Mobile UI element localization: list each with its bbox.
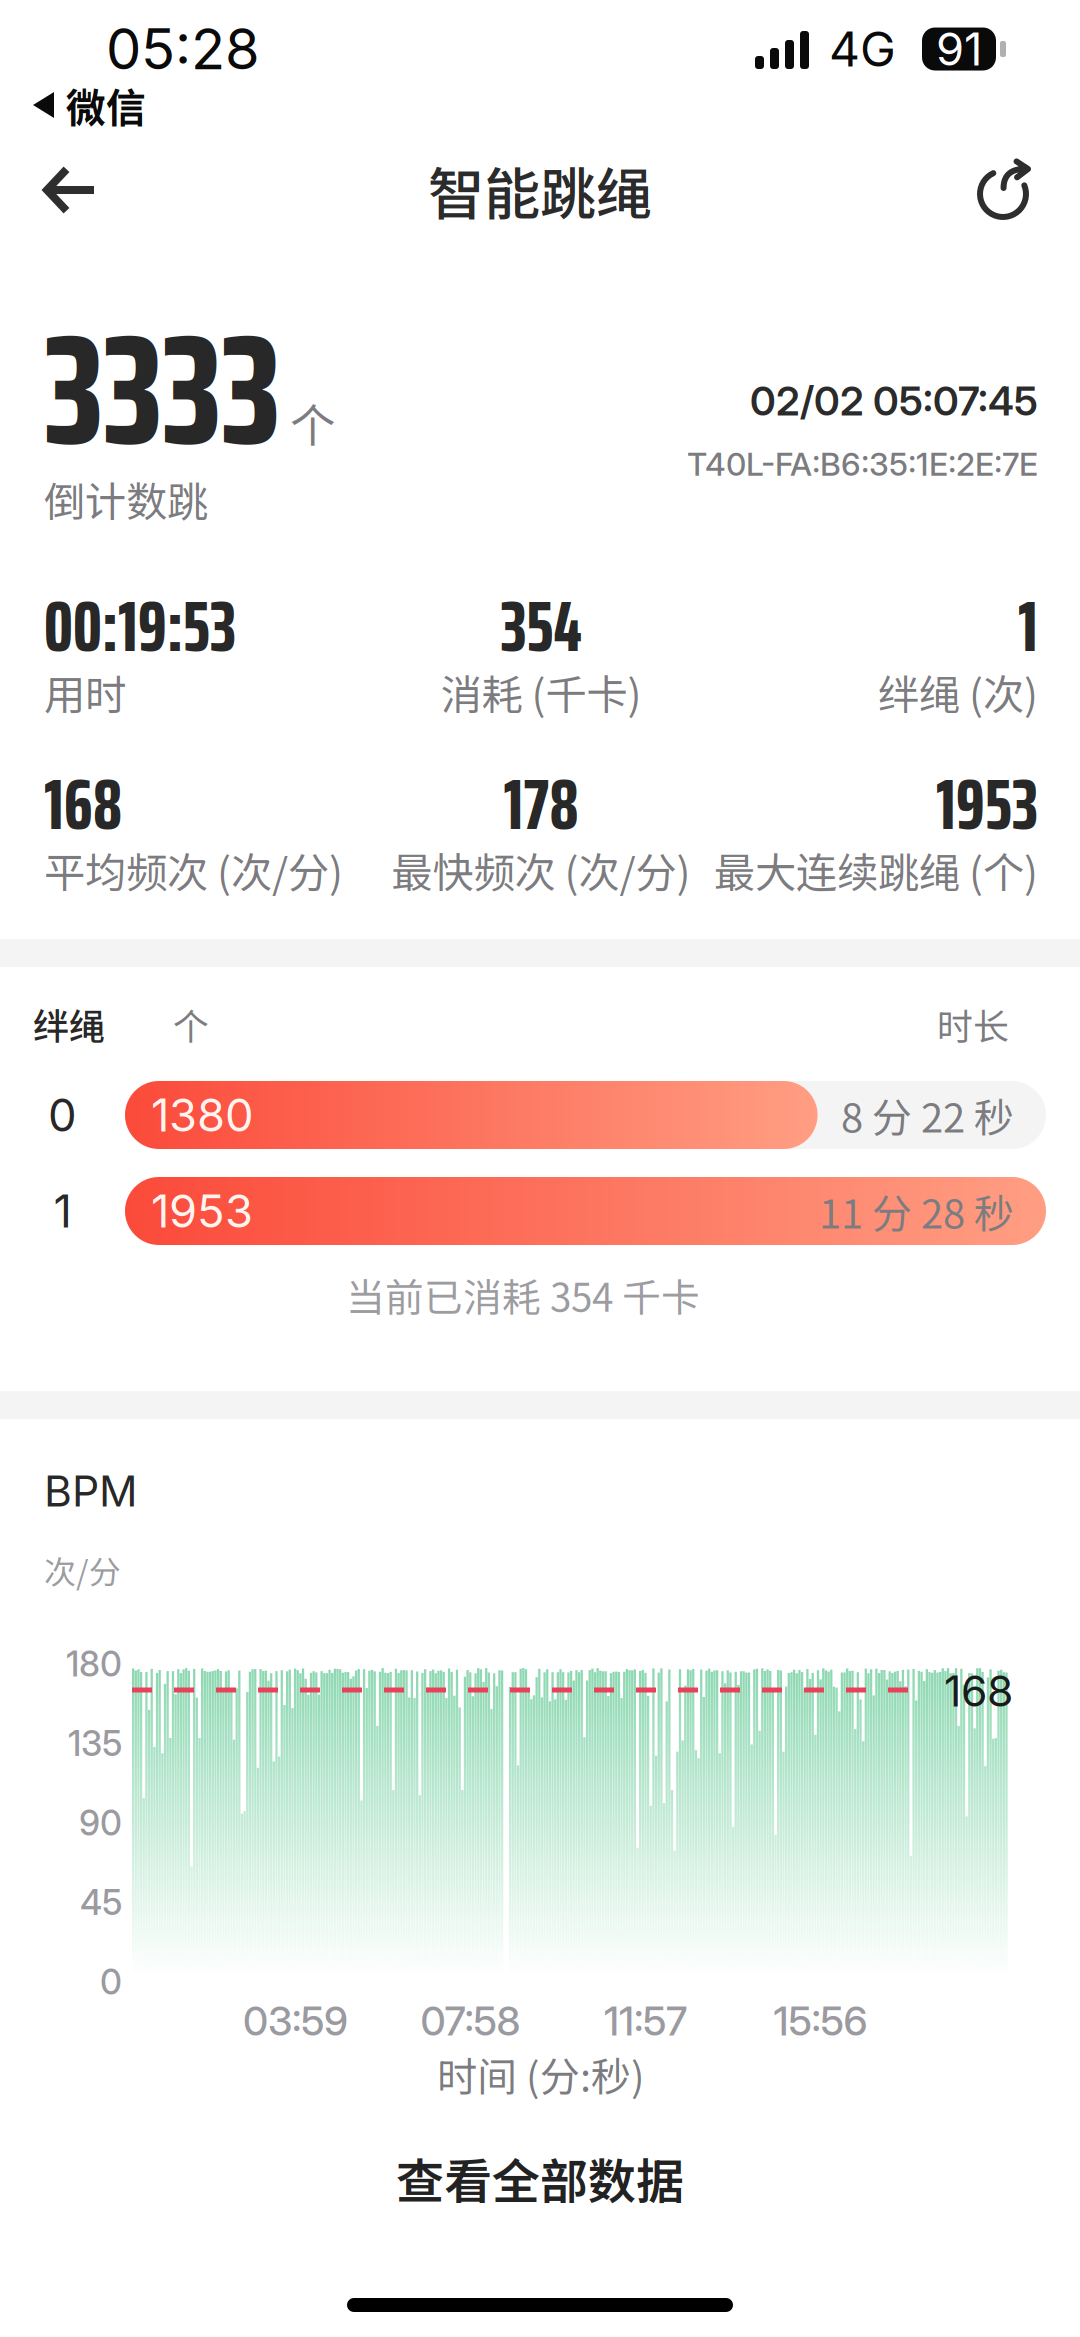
staticText: 11:57 bbox=[604, 1997, 687, 2045]
staticText: 1953 bbox=[151, 1184, 253, 1238]
staticText: 倒计数跳 bbox=[44, 469, 208, 529]
staticText: 微信 bbox=[66, 76, 146, 134]
staticText: 1953 bbox=[936, 747, 1038, 861]
staticText: 0 bbox=[100, 1961, 122, 2003]
staticText: 00:19:53 bbox=[44, 569, 236, 683]
staticText: 时长 bbox=[937, 998, 1009, 1050]
staticText: 135 bbox=[68, 1722, 122, 1764]
staticText: 智能跳绳 bbox=[428, 149, 652, 231]
staticText: 时间 (分:秒) bbox=[437, 2045, 645, 2103]
staticText: 45 bbox=[80, 1881, 122, 1923]
staticText: 354 bbox=[500, 569, 581, 683]
staticText: 15:56 bbox=[773, 1997, 867, 2045]
staticText: T40L-FA:B6:35:1E:2E:7E bbox=[687, 445, 1038, 483]
staticText: 90 bbox=[79, 1802, 122, 1844]
staticText: BPM bbox=[44, 1465, 138, 1517]
staticText: 用时 bbox=[44, 662, 126, 722]
staticText: 178 bbox=[503, 747, 578, 861]
staticText: 最大连续跳绳 (个) bbox=[714, 840, 1038, 900]
staticText: 07:58 bbox=[420, 1997, 520, 2045]
staticText: 0 bbox=[48, 1088, 77, 1142]
staticText: 查看全部数据 bbox=[396, 2143, 684, 2213]
staticText: 当前已消耗 354 千卡 bbox=[346, 1267, 700, 1323]
staticText: 02/02 05:07:45 bbox=[750, 377, 1038, 425]
staticText: 消耗 (千卡) bbox=[440, 662, 641, 722]
staticText: 1 bbox=[53, 1184, 71, 1238]
staticText: 91 bbox=[936, 22, 982, 76]
staticText: 05:28 bbox=[106, 15, 260, 83]
staticText: 4G bbox=[829, 20, 896, 78]
staticText: 个 bbox=[290, 389, 335, 455]
staticText: 次/分 bbox=[44, 1547, 121, 1593]
button[interactable]: Share bbox=[950, 139, 1080, 241]
staticText: 绊绳 (次) bbox=[878, 662, 1038, 722]
staticText: 168 bbox=[944, 1665, 1013, 1717]
staticText: 1380 bbox=[151, 1088, 254, 1142]
staticText: 8 分 22 秒 bbox=[841, 1086, 1014, 1144]
staticText: 03:59 bbox=[243, 1997, 348, 2045]
staticText: 最快频次 (次/分) bbox=[391, 840, 690, 900]
staticText: 180 bbox=[66, 1643, 122, 1685]
staticText: 1 bbox=[1018, 569, 1038, 683]
staticText: 11 分 28 秒 bbox=[819, 1182, 1014, 1240]
staticText: 3333 bbox=[44, 268, 280, 512]
staticText: 平均频次 (次/分) bbox=[44, 840, 343, 900]
staticText: 绊绳 bbox=[33, 998, 105, 1050]
button[interactable]: Back bbox=[0, 141, 124, 239]
staticText: 168 bbox=[44, 747, 122, 861]
staticText: 个 bbox=[173, 998, 209, 1050]
button[interactable]: 查看全部数据 bbox=[0, 2136, 1080, 2220]
